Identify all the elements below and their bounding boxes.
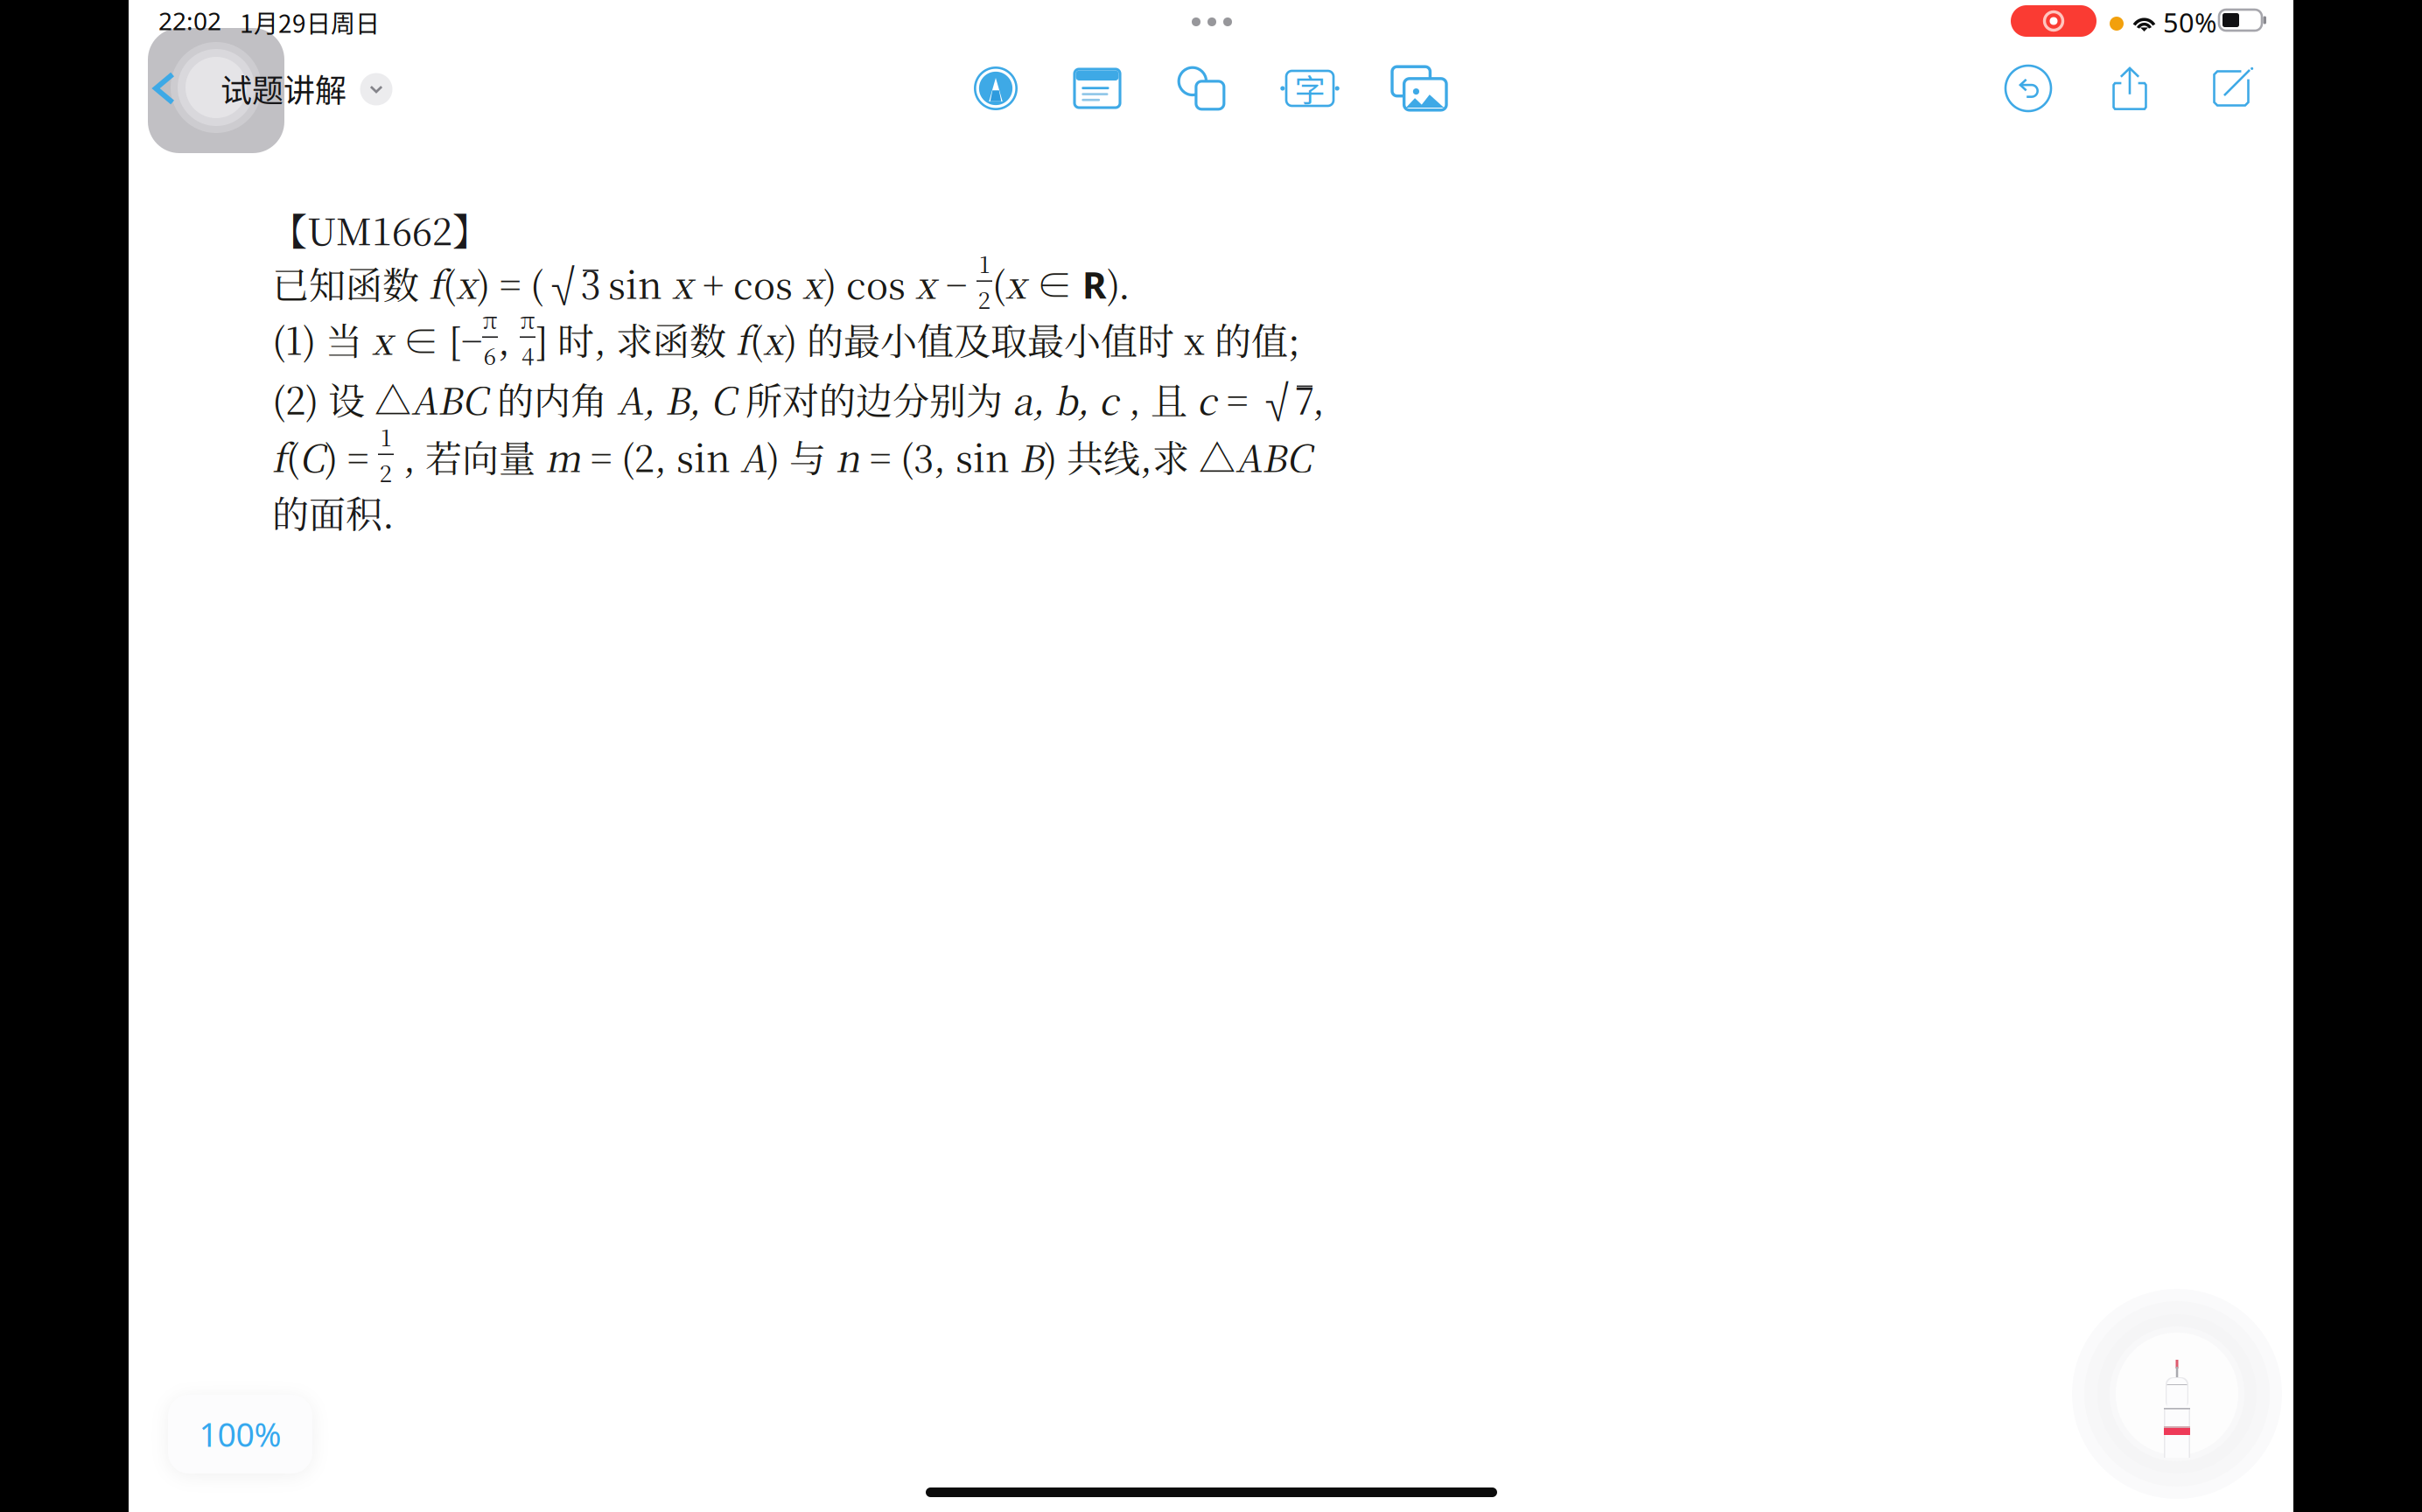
staticText: π xyxy=(520,303,535,335)
staticText: , xyxy=(1312,372,1325,425)
button[interactable]: Undo xyxy=(1987,47,2069,129)
staticText: sin x + cos x) cos x − xyxy=(598,257,976,309)
button[interactable]: 试题讲解 xyxy=(129,31,366,145)
staticText: (x ∈ R). xyxy=(992,257,1130,309)
staticText: [− xyxy=(449,312,482,365)
staticText: 3 xyxy=(581,256,601,309)
staticText: 字 xyxy=(1295,66,1325,111)
staticText: 100% xyxy=(199,1412,281,1456)
staticText: 1 xyxy=(979,247,990,279)
staticText: 2 xyxy=(978,283,991,315)
staticText: π xyxy=(483,303,497,335)
staticText: ] 时, 求函数 f(x) 的最小值及取最小值时 x 的值; xyxy=(535,313,1300,365)
button[interactable]: Document options xyxy=(347,60,405,118)
button[interactable]: Share xyxy=(2089,47,2171,129)
staticText: 6 xyxy=(483,339,497,371)
staticText: 4 xyxy=(521,339,534,371)
staticText: √ xyxy=(543,255,583,312)
staticText: , 若向量 m = (2, sin A) 与 n = (3, sin B) 共线… xyxy=(394,430,1312,482)
button[interactable]: Text note xyxy=(1056,47,1138,129)
staticText: 22:02 xyxy=(158,4,221,37)
staticText: 1月29日周日 xyxy=(240,4,380,40)
staticText: 已知函数 f(x) = ( xyxy=(272,257,543,309)
staticText: 的面积. xyxy=(272,486,395,538)
staticText: f(C) = xyxy=(272,430,378,482)
button[interactable]: Compose xyxy=(2190,47,2272,129)
staticText: 50% xyxy=(2163,4,2216,40)
staticText: 2 xyxy=(379,456,392,489)
staticText: 【UM1662】 xyxy=(270,203,489,256)
button[interactable]: Pen tool xyxy=(2072,1289,2282,1499)
staticText: √ xyxy=(1257,371,1297,428)
button[interactable]: 100% xyxy=(168,1395,312,1473)
button[interactable]: Draw xyxy=(955,47,1037,129)
staticText: 7 xyxy=(1295,372,1315,425)
button[interactable]: Insert image xyxy=(1378,47,1460,129)
staticText: (1) 当 x ∈ xyxy=(272,313,449,365)
staticText: (2) 设 △ABC 的内角 A, B, C 所对的边分别为 a, b, c ,… xyxy=(272,373,1257,424)
staticText: 1 xyxy=(381,420,391,453)
button[interactable]: Shapes xyxy=(1160,47,1242,129)
staticText: 试题讲解 xyxy=(221,66,347,111)
staticText: , xyxy=(498,312,520,365)
button[interactable]: Text box xyxy=(1269,47,1351,129)
